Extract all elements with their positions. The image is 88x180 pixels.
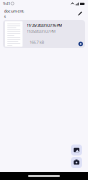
button[interactable]: Scan with camera bbox=[71, 157, 82, 168]
button[interactable]: Edit bbox=[76, 9, 84, 17]
staticText: 166.7 kB bbox=[29, 39, 44, 45]
staticText: 11/25/2023 9:27 PM bbox=[26, 29, 56, 34]
staticText: 9:41 bbox=[3, 1, 10, 6]
staticText: documents bbox=[4, 8, 24, 19]
button[interactable]: 11/25/2023 9:27:16 PM bbox=[3, 20, 85, 48]
staticText: 11/25/2023 9:27:16 PM bbox=[26, 22, 62, 28]
button[interactable]: Import image bbox=[71, 144, 82, 155]
